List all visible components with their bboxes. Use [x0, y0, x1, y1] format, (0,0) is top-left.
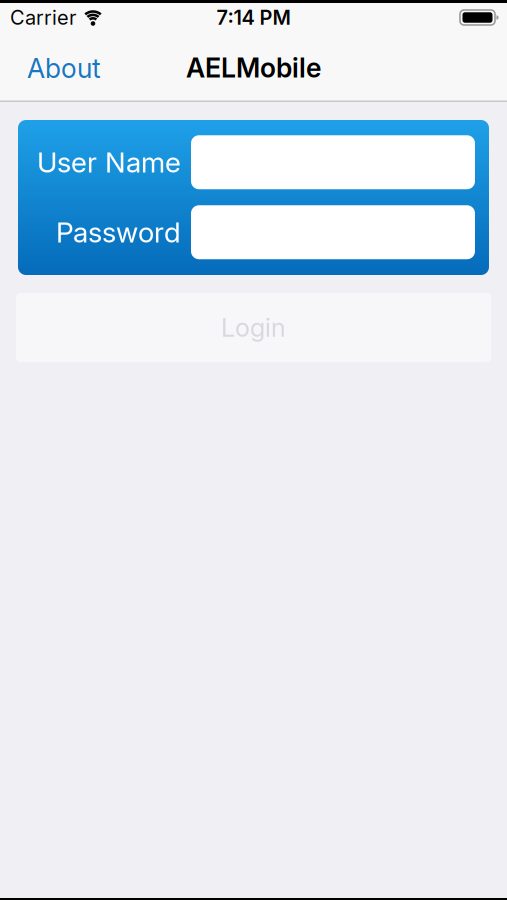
- staticText: User Name: [37, 145, 181, 179]
- button[interactable]: About: [0, 32, 101, 100]
- staticText: AELMobile: [186, 52, 321, 84]
- staticText: Password: [56, 215, 181, 249]
- staticText: About: [27, 52, 101, 84]
- staticText: Login: [221, 312, 286, 343]
- button[interactable]: Password text field: [191, 205, 475, 259]
- staticText: 7:14 PM: [216, 5, 290, 30]
- button[interactable]: User Name text field: [191, 135, 475, 189]
- staticText: Carrier: [10, 5, 76, 30]
